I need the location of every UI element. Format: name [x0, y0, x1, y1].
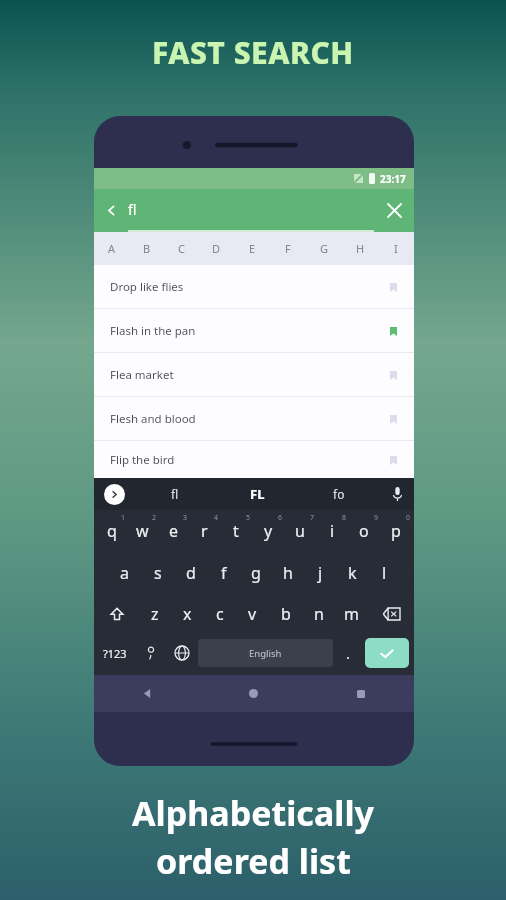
button[interactable]: Enter	[365, 638, 409, 668]
staticText: t	[233, 520, 239, 542]
button[interactable]: Bookmark	[380, 362, 406, 388]
button[interactable]: Flesh and blood	[94, 397, 414, 440]
staticText: Flash in the pan	[110, 323, 196, 339]
staticText: f	[221, 562, 227, 584]
button[interactable]: m	[335, 593, 368, 634]
staticText: g	[251, 562, 261, 584]
staticText: 1	[121, 513, 126, 523]
staticText: 6	[278, 513, 283, 523]
staticText: n	[314, 603, 324, 625]
button[interactable]: u	[284, 510, 316, 552]
button[interactable]: c	[203, 593, 236, 634]
button[interactable]: .	[333, 634, 363, 672]
staticText: p	[391, 520, 401, 542]
button[interactable]: y	[252, 510, 284, 552]
button[interactable]: E	[234, 232, 270, 265]
staticText: F	[285, 241, 291, 256]
button[interactable]: Back	[94, 189, 128, 232]
staticText: j	[318, 562, 323, 584]
staticText: E	[249, 241, 256, 256]
button[interactable]: Clear search	[374, 189, 414, 232]
button[interactable]: H	[342, 232, 378, 265]
staticText: fl	[171, 486, 179, 502]
button[interactable]: z	[139, 593, 171, 634]
button[interactable]: h	[272, 552, 304, 593]
button[interactable]: A	[94, 232, 129, 265]
button[interactable]: d	[174, 552, 207, 593]
button[interactable]: D	[199, 232, 234, 265]
button[interactable]: ?123	[94, 634, 136, 672]
button[interactable]: English	[198, 639, 333, 667]
staticText: i	[330, 520, 335, 542]
button[interactable]: Bookmark	[380, 406, 406, 432]
staticText: FL	[250, 485, 265, 503]
staticText: q	[107, 520, 117, 542]
staticText: fo	[333, 486, 345, 502]
button[interactable]: q	[96, 510, 127, 552]
staticText: Flea market	[110, 367, 174, 383]
staticText: G	[320, 241, 329, 256]
staticText: h	[283, 562, 293, 584]
button[interactable]: o	[348, 510, 380, 552]
button[interactable]: Home	[200, 675, 307, 712]
staticText: 3	[183, 513, 188, 523]
button[interactable]: Voice input	[380, 478, 414, 510]
button[interactable]: b	[269, 593, 302, 634]
staticText: b	[281, 603, 291, 625]
staticText: d	[186, 562, 196, 584]
button[interactable]: j	[304, 552, 336, 593]
button[interactable]: More suggestions	[94, 478, 134, 510]
button[interactable]: C	[164, 232, 199, 265]
button[interactable]: fl	[128, 189, 374, 232]
staticText: fl	[128, 200, 137, 219]
staticText: English	[249, 647, 282, 660]
staticText: Flip the bird	[110, 452, 175, 468]
button[interactable]: x	[171, 593, 203, 634]
button[interactable]: a	[108, 552, 141, 593]
button[interactable]: k	[336, 552, 368, 593]
staticText: 5	[246, 513, 251, 523]
staticText: s	[154, 562, 162, 584]
button[interactable]: e	[158, 510, 189, 552]
button[interactable]: p	[380, 510, 412, 552]
button[interactable]: B	[129, 232, 164, 265]
button[interactable]: Shift	[94, 593, 139, 634]
staticText: m	[344, 603, 359, 625]
button[interactable]: Recents	[307, 675, 414, 712]
staticText: y	[264, 520, 273, 542]
staticText: 8	[342, 513, 347, 523]
button[interactable]: fl	[134, 478, 216, 510]
staticText: ordered list	[156, 838, 351, 884]
button[interactable]: Flash in the pan	[94, 309, 414, 352]
staticText: z	[151, 603, 159, 625]
button[interactable]: Drop like flies	[94, 265, 414, 308]
staticText: Drop like flies	[110, 279, 184, 295]
button[interactable]: v	[236, 593, 269, 634]
button[interactable]: g	[240, 552, 272, 593]
button[interactable]: FL	[216, 478, 298, 510]
button[interactable]: I	[378, 232, 414, 265]
button[interactable]: l	[368, 552, 400, 593]
button[interactable]: s	[141, 552, 174, 593]
button[interactable]: r	[189, 510, 220, 552]
button[interactable]: Flea market	[94, 353, 414, 396]
button[interactable]: Emoji and comma	[136, 634, 166, 672]
staticText: D	[212, 241, 221, 256]
button[interactable]: t	[220, 510, 252, 552]
button[interactable]: w	[127, 510, 158, 552]
button[interactable]: fo	[298, 478, 380, 510]
button[interactable]: Bookmark	[380, 318, 406, 344]
button[interactable]: F	[270, 232, 306, 265]
staticText: ?123	[103, 646, 127, 661]
button[interactable]: i	[316, 510, 348, 552]
button[interactable]: Bookmark	[380, 447, 406, 473]
button[interactable]: Bookmark	[380, 274, 406, 300]
button[interactable]: G	[306, 232, 342, 265]
button[interactable]: Change language	[166, 634, 198, 672]
button[interactable]: Back	[94, 675, 200, 712]
button[interactable]: Backspace	[368, 593, 414, 634]
staticText: x	[183, 603, 192, 625]
button[interactable]: n	[302, 593, 335, 634]
button[interactable]: Flip the bird	[94, 441, 414, 478]
button[interactable]: f	[207, 552, 240, 593]
